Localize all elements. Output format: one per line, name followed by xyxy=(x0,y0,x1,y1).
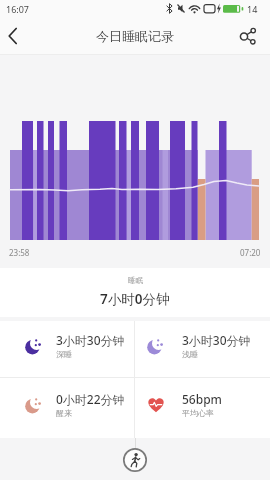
button[interactable]: 3小时30分钟 xyxy=(0,321,134,377)
staticText: 平均心率 xyxy=(182,408,214,418)
button[interactable] xyxy=(234,18,270,54)
staticText: 14 xyxy=(247,3,258,15)
staticText: 07:20 xyxy=(240,247,261,258)
staticText: 56bpm xyxy=(182,391,222,407)
staticText: 3小时30分钟 xyxy=(182,332,251,348)
staticText: 深睡 xyxy=(56,349,72,359)
staticText: 今日睡眠记录 xyxy=(96,28,174,44)
button[interactable]: 睡眠 xyxy=(0,268,270,317)
staticText: 16:07 xyxy=(6,3,30,15)
staticText: 7小时0分钟 xyxy=(100,290,170,308)
button[interactable] xyxy=(0,19,34,53)
staticText: 醒来 xyxy=(56,408,72,418)
button[interactable]: 0小时22分钟 xyxy=(0,378,134,438)
staticText: 浅睡 xyxy=(182,349,198,359)
staticText: 睡眠 xyxy=(128,276,143,285)
button[interactable]: 56bpm xyxy=(135,378,270,438)
button[interactable] xyxy=(123,448,147,472)
staticText: 0小时22分钟 xyxy=(56,391,125,407)
button[interactable]: 3小时30分钟 xyxy=(135,321,270,377)
staticText: 23:58 xyxy=(9,247,30,258)
staticText: 3小时30分钟 xyxy=(56,332,125,348)
